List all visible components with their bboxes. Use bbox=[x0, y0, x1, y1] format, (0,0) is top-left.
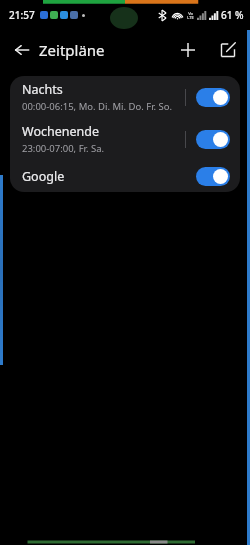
button[interactable]: Ein/Aus bbox=[196, 167, 230, 186]
button[interactable]: Zurück bbox=[5, 33, 39, 67]
button[interactable]: Ein/Aus bbox=[196, 130, 230, 149]
staticText: 23:00-07:00, Fr. Sa. bbox=[22, 142, 105, 155]
staticText: Vo LTE bbox=[187, 11, 194, 20]
button[interactable]: Nachts bbox=[10, 76, 240, 118]
button[interactable]: Ein/Aus bbox=[196, 88, 230, 107]
staticText: 21:57 bbox=[9, 8, 35, 22]
staticText: Nachts bbox=[22, 81, 63, 98]
staticText: 00:00-06:15, Mo. Di. Mi. Do. Fr. So. bbox=[22, 100, 173, 113]
button[interactable]: Google bbox=[10, 160, 240, 192]
staticText: 61 % bbox=[221, 8, 244, 22]
button[interactable]: Bearbeiten bbox=[212, 34, 244, 66]
staticText: Zeitpläne bbox=[39, 40, 105, 60]
staticText: Google bbox=[22, 168, 65, 185]
staticText: Wochenende bbox=[22, 123, 99, 140]
button[interactable]: Wochenende bbox=[10, 118, 240, 160]
button[interactable]: Hinzufügen bbox=[172, 34, 204, 66]
